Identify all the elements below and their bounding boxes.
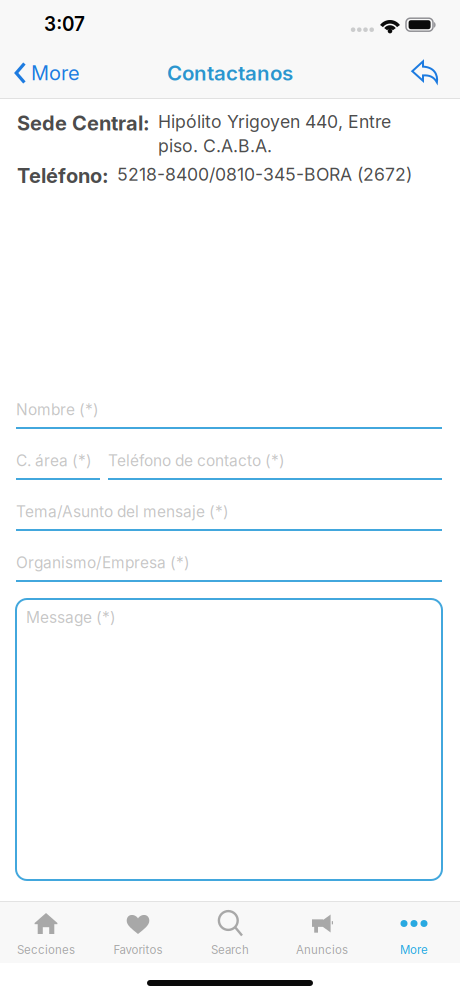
staticText: Sede Central: [17, 111, 150, 135]
staticText: 3:07 [44, 12, 85, 35]
button[interactable]: More [368, 902, 460, 963]
button[interactable]: More [0, 48, 92, 98]
button[interactable]: Secciones [0, 902, 92, 963]
staticText: 5218-8400/0810-345-BORA (2672) [117, 164, 412, 185]
staticText: Teléfono de contacto (*) [108, 451, 285, 470]
button[interactable]: Share [395, 48, 460, 98]
staticText: C. área (*) [16, 451, 92, 470]
staticText: More [400, 943, 428, 957]
staticText: Teléfono: [17, 164, 109, 188]
staticText: Hipólito Yrigoyen 440, Entre [158, 111, 391, 132]
staticText: Secciones [17, 943, 75, 957]
staticText: piso. C.A.B.A. [158, 135, 272, 157]
button[interactable]: Favoritos [92, 902, 184, 963]
button[interactable]: Search [184, 902, 276, 963]
staticText: Contactanos [167, 61, 293, 85]
staticText: More [31, 61, 80, 85]
staticText: Anuncios [296, 943, 348, 957]
staticText: Nombre (*) [16, 400, 99, 419]
staticText: Favoritos [113, 943, 162, 957]
staticText: Search [211, 943, 249, 957]
staticText: Organismo/Empresa (*) [16, 553, 190, 572]
staticText: Tema/Asunto del mensaje (*) [16, 502, 229, 521]
staticText: Message (*) [26, 608, 116, 627]
button[interactable]: Anuncios [276, 902, 368, 963]
